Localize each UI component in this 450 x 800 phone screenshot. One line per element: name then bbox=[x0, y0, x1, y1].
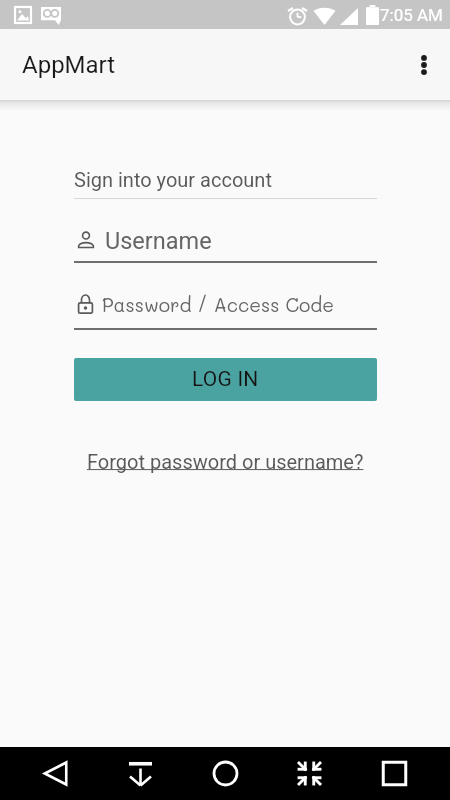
button[interactable]: Password / Access Code bbox=[74, 293, 377, 329]
button[interactable]: Username bbox=[74, 226, 377, 262]
staticText: AppMart bbox=[22, 51, 116, 79]
staticText: 7:05 AM bbox=[380, 5, 443, 25]
button[interactable]: Recents bbox=[368, 747, 421, 800]
staticText: Password / Access Code bbox=[102, 292, 335, 317]
button[interactable]: Back bbox=[29, 747, 82, 800]
staticText: Forgot password or username? bbox=[87, 450, 364, 473]
button[interactable]: More options bbox=[401, 42, 447, 88]
staticText: Username bbox=[105, 227, 212, 255]
staticText: LOG IN bbox=[192, 367, 259, 392]
button[interactable]: Shrink bbox=[283, 747, 336, 800]
button[interactable]: Home bbox=[199, 747, 252, 800]
staticText: Sign into your account bbox=[74, 168, 272, 191]
button[interactable]: LOG IN bbox=[74, 358, 377, 401]
button[interactable]: Forgot password or username? bbox=[81, 446, 370, 477]
button[interactable]: Hide keyboard bbox=[114, 747, 167, 800]
